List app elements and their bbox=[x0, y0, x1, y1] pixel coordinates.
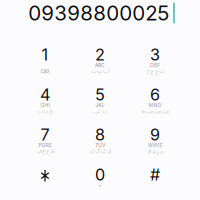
button[interactable]: # bbox=[128, 165, 182, 200]
staticText: 6 bbox=[150, 85, 160, 104]
staticText: DEF bbox=[150, 62, 160, 68]
staticText: 0 bbox=[95, 165, 105, 184]
staticText: # bbox=[150, 165, 160, 184]
button[interactable]: 6 bbox=[128, 85, 182, 125]
staticText: ظ ع غ ف bbox=[36, 145, 54, 157]
staticText: 5 bbox=[95, 85, 105, 104]
staticText: 4 bbox=[40, 85, 50, 104]
staticText: 1 bbox=[41, 45, 48, 64]
staticText: PQRS bbox=[38, 142, 51, 148]
staticText: 9 bbox=[150, 125, 160, 144]
button[interactable]: 0 bbox=[73, 165, 127, 200]
button[interactable]: 9 bbox=[128, 125, 182, 165]
button[interactable]: 5 bbox=[73, 85, 127, 125]
staticText: ق ک گ ل bbox=[89, 145, 110, 157]
staticText: ث ج چ ح bbox=[146, 65, 164, 77]
staticText: GHI bbox=[40, 102, 49, 108]
staticText: 3 bbox=[150, 45, 160, 64]
staticText: JKL bbox=[95, 102, 104, 108]
staticText: ا ب پ ت bbox=[90, 65, 109, 77]
staticText: MNO bbox=[148, 102, 161, 108]
button[interactable]: 8 bbox=[73, 125, 127, 165]
staticText: 09398800025 bbox=[28, 1, 169, 25]
staticText: + bbox=[98, 182, 101, 188]
button[interactable]: 3 bbox=[128, 45, 182, 85]
staticText: ز ژ س bbox=[93, 105, 106, 117]
staticText: خ د ذ ر bbox=[38, 105, 52, 117]
staticText: م ن و ه bbox=[147, 145, 163, 157]
staticText: ABC bbox=[95, 62, 105, 68]
staticText: 7 bbox=[40, 125, 49, 144]
staticText: 8 bbox=[95, 125, 105, 144]
button[interactable]: 4 bbox=[18, 85, 72, 125]
button[interactable] bbox=[18, 165, 72, 200]
staticText: TUV bbox=[95, 142, 105, 148]
button[interactable]: 7 bbox=[18, 125, 72, 165]
button[interactable]: 2 bbox=[73, 45, 127, 85]
button[interactable]: 1 bbox=[18, 45, 72, 85]
staticText: ش ص ض ط bbox=[141, 105, 169, 117]
staticText: WXYZ bbox=[148, 142, 162, 148]
staticText: 2 bbox=[95, 45, 105, 64]
